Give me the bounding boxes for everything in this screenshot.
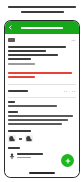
button[interactable] <box>8 152 76 159</box>
button[interactable]: More <box>70 88 76 94</box>
button[interactable]: More options <box>70 37 76 43</box>
button[interactable]: Edit <box>62 88 68 94</box>
button[interactable]: More options <box>8 37 76 43</box>
button[interactable]: Back <box>5 21 16 34</box>
button[interactable]: Photo <box>8 135 16 142</box>
button[interactable]: Edit <box>8 88 76 94</box>
button[interactable]: Add <box>61 154 74 167</box>
button[interactable]: Photo <box>25 135 33 142</box>
